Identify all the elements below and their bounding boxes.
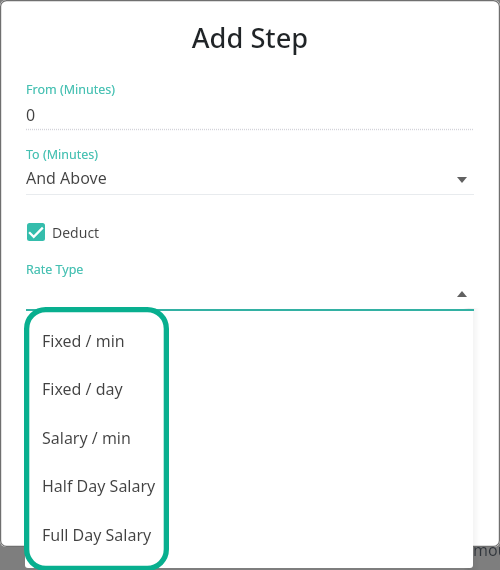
button[interactable]: Deduct bbox=[27, 221, 100, 243]
staticText: Add Step bbox=[0, 19, 500, 56]
button[interactable]: Full Day Salary bbox=[26, 510, 473, 559]
button[interactable]: Half Day Salary bbox=[26, 461, 473, 510]
staticText: mount bbox=[473, 539, 500, 561]
button[interactable]: Open To (Minutes) dropdown bbox=[455, 175, 469, 185]
staticText: Fixed / day bbox=[42, 378, 123, 400]
button[interactable]: Fixed / day bbox=[26, 364, 473, 413]
button[interactable]: Close Rate Type dropdown bbox=[455, 289, 469, 299]
staticText: Fixed / min bbox=[42, 330, 125, 352]
staticText: Salary / min bbox=[42, 427, 131, 449]
staticText: To (Minutes) bbox=[26, 146, 98, 163]
staticText: Rate Type bbox=[26, 261, 84, 278]
staticText: Half Day Salary bbox=[42, 475, 156, 497]
staticText: Full Day Salary bbox=[42, 524, 152, 546]
staticText: 0 bbox=[26, 104, 36, 126]
button[interactable]: Fixed / min bbox=[26, 316, 473, 365]
staticText: And Above bbox=[26, 167, 107, 189]
button[interactable]: Salary / min bbox=[26, 413, 473, 462]
staticText: Deduct bbox=[52, 223, 100, 242]
staticText: From (Minutes) bbox=[26, 81, 115, 98]
